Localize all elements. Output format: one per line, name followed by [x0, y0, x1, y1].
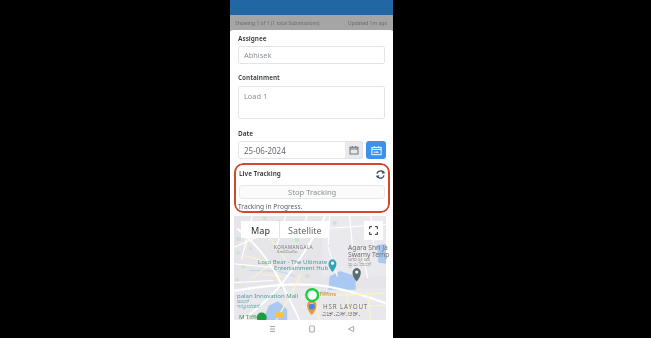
staticText: Live Tracking: [239, 169, 281, 178]
staticText: Entertainment Hub: [274, 264, 329, 272]
staticText: Containment: [238, 73, 280, 82]
staticText: Load 1: [244, 91, 268, 101]
button[interactable]: Recent apps: [263, 320, 282, 338]
button[interactable]: Pick date: [366, 141, 386, 159]
staticText: Loco Bear - The Ultimate: [258, 258, 328, 266]
staticText: Updated 1m ago: [348, 20, 388, 27]
staticText: Agara Shri Ja: [348, 243, 388, 252]
button[interactable]: Refresh: [374, 168, 387, 181]
staticText: KORAMANGALA: [274, 244, 314, 250]
button[interactable]: Load 1: [238, 86, 385, 119]
staticText: Swamy Temp: [348, 250, 390, 259]
staticText: ಸ್ವಾಮಿ ದೇವಸ್: [348, 261, 372, 268]
staticText: M Tiffins: [239, 313, 264, 321]
button[interactable]: Abhisek: [238, 46, 385, 64]
staticText: ಆಗರ ಶ್ರೀ ಜಲ: [348, 256, 371, 263]
staticText: 25-06-2024: [244, 145, 345, 156]
staticText: Tiffins: [319, 290, 337, 298]
staticText: ಎಚ್.ಎಸ್.ಆರ್.: [322, 309, 361, 319]
staticText: Map: [251, 224, 270, 236]
button[interactable]: Map: [241, 221, 279, 238]
staticText: Showing 1 of 1 (1 total Submissions): [235, 20, 320, 27]
staticText: palan Innovation Mall: [237, 292, 299, 300]
button[interactable]: Stop Tracking: [239, 185, 385, 199]
staticText: ಕೋರಮಂಗಲ: [277, 249, 298, 254]
staticText: HSR LAYOUT: [323, 302, 369, 311]
button[interactable]: Home: [302, 320, 321, 338]
button[interactable]: Back: [341, 320, 360, 338]
staticText: Satellite: [288, 224, 322, 236]
staticText: Tracking in Progress.: [238, 202, 303, 211]
staticText: ಇನ್ನೋವೇಶನ್: [237, 304, 261, 309]
staticText: Stop Tracking: [288, 187, 337, 197]
staticText: Assignee: [238, 34, 267, 43]
button[interactable]: Fullscreen: [364, 221, 383, 240]
staticText: Abhisek: [244, 50, 272, 60]
button[interactable]: 25-06-2024: [238, 141, 363, 159]
button[interactable]: Satellite: [280, 221, 329, 238]
staticText: ಪಾಲನ್: [237, 299, 250, 304]
staticText: Date: [238, 129, 254, 138]
